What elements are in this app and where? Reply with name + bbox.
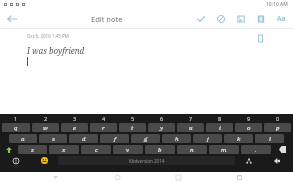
- button[interactable]: Emoji: [31, 156, 57, 165]
- button[interactable]: Keyboard settings: [1, 156, 31, 165]
- button[interactable]: Voice input: [236, 156, 262, 165]
- button[interactable]: Attach: [251, 9, 271, 28]
- staticText: Oct 6, 2016 1:45 PM: [27, 33, 69, 39]
- staticText: l: [269, 135, 271, 143]
- button[interactable]: 6: [147, 115, 176, 122]
- button[interactable]: h: [162, 134, 191, 143]
- button[interactable]: k: [224, 134, 253, 143]
- button[interactable]: Undo: [211, 9, 231, 28]
- button[interactable]: 1: [1, 115, 31, 122]
- button[interactable]: a: [9, 134, 37, 143]
- staticText: g: [144, 135, 148, 143]
- button[interactable]: s: [39, 134, 67, 143]
- staticText: i: [219, 124, 221, 132]
- button[interactable]: y: [148, 123, 175, 132]
- staticText: e: [73, 124, 76, 132]
- staticText: f: [114, 135, 116, 143]
- button[interactable]: q: [2, 123, 30, 132]
- staticText: r: [102, 124, 105, 132]
- button[interactable]: n: [177, 145, 207, 154]
- button[interactable]: d: [69, 134, 98, 143]
- button[interactable]: Bookmark: [253, 31, 267, 45]
- staticText: c: [95, 146, 98, 154]
- staticText: d: [82, 135, 86, 143]
- button[interactable]: 4: [89, 115, 118, 122]
- button[interactable]: u: [177, 123, 204, 132]
- button[interactable]: w: [32, 123, 59, 132]
- staticText: 1: [14, 115, 18, 122]
- button[interactable]: b: [145, 145, 175, 154]
- staticText: a: [21, 135, 25, 143]
- staticText: t: [131, 124, 134, 132]
- button[interactable]: x: [49, 145, 79, 154]
- staticText: n: [190, 146, 194, 154]
- button[interactable]: 9: [234, 115, 263, 122]
- staticText: v: [126, 146, 130, 154]
- button[interactable]: r: [90, 123, 117, 132]
- button[interactable]: c: [81, 145, 111, 154]
- staticText: Kbdversion 2014: [129, 158, 165, 164]
- staticText: 10:10 AM: [266, 1, 288, 8]
- button[interactable]: g: [131, 134, 160, 143]
- button[interactable]: p: [264, 123, 291, 132]
- button[interactable]: Insert image: [231, 9, 251, 28]
- staticText: 3: [73, 115, 77, 122]
- button[interactable]: z: [18, 145, 47, 154]
- staticText: Aa: [277, 14, 286, 24]
- staticText: I was boyfriend: [27, 45, 85, 56]
- button[interactable]: Back: [0, 9, 24, 28]
- button[interactable]: 7: [176, 115, 205, 122]
- staticText: z: [31, 146, 35, 154]
- button[interactable]: m: [209, 145, 239, 154]
- staticText: y: [160, 124, 164, 132]
- button[interactable]: v: [113, 145, 143, 154]
- button[interactable]: Enter: [262, 156, 292, 165]
- button[interactable]: j: [193, 134, 222, 143]
- button[interactable]: e: [61, 123, 88, 132]
- staticText: 2: [44, 115, 48, 122]
- staticText: k: [237, 135, 241, 143]
- staticText: o: [247, 124, 251, 132]
- staticText: j: [207, 135, 209, 143]
- staticText: 4: [102, 115, 106, 122]
- staticText: 9: [247, 115, 251, 122]
- button[interactable]: Screenshot: [232, 172, 246, 183]
- staticText: u: [189, 124, 193, 132]
- staticText: b: [158, 146, 162, 154]
- staticText: 7: [189, 115, 193, 122]
- staticText: 5: [131, 115, 135, 122]
- button[interactable]: f: [100, 134, 129, 143]
- button[interactable]: 0: [263, 115, 292, 122]
- button[interactable]: Home: [110, 172, 124, 183]
- button[interactable]: 2: [31, 115, 60, 122]
- button[interactable]: o: [235, 123, 262, 132]
- staticText: 6: [160, 115, 164, 122]
- staticText: w: [43, 124, 48, 132]
- staticText: x: [62, 146, 66, 154]
- button[interactable]: Recents: [171, 172, 185, 183]
- staticText: h: [175, 135, 179, 143]
- button[interactable]: t: [119, 123, 146, 132]
- button[interactable]: Save: [191, 9, 211, 28]
- staticText: .: [255, 146, 257, 154]
- staticText: Edit note: [91, 14, 123, 24]
- staticText: q: [14, 124, 18, 132]
- button[interactable]: Back: [48, 172, 62, 183]
- button[interactable]: 3: [60, 115, 89, 122]
- staticText: m: [221, 146, 227, 154]
- button[interactable]: 5: [118, 115, 147, 122]
- staticText: s: [52, 135, 55, 143]
- button[interactable]: l: [255, 134, 284, 143]
- staticText: 8: [218, 115, 222, 122]
- staticText: p: [276, 124, 280, 132]
- staticText: 0: [276, 115, 280, 122]
- button[interactable]: 8: [205, 115, 234, 122]
- button[interactable]: Shift: [1, 145, 17, 154]
- button[interactable]: Kbdversion 2014: [58, 156, 235, 165]
- button[interactable]: .: [241, 145, 271, 154]
- button[interactable]: i: [206, 123, 233, 132]
- button[interactable]: Backspace: [272, 145, 292, 154]
- button[interactable]: Text style: [271, 9, 291, 28]
